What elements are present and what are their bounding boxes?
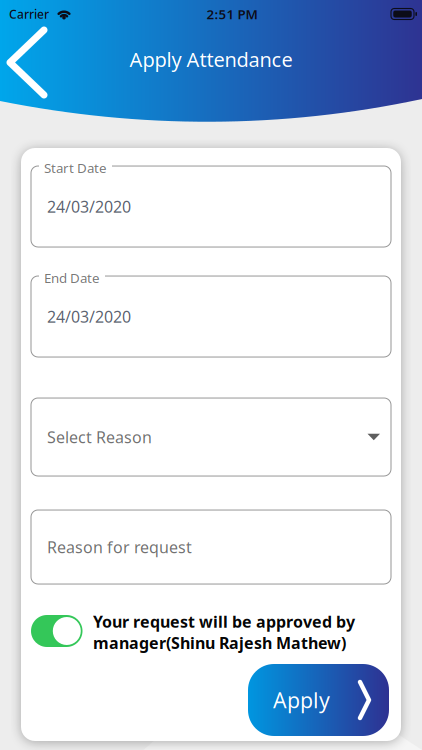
staticText: Start Date [44, 159, 107, 177]
staticText: 24/03/2020 [47, 306, 131, 327]
staticText: 2:51 PM [206, 5, 257, 23]
staticText: Apply Attendance [129, 46, 292, 73]
button[interactable]: Apply [248, 664, 389, 736]
staticText: Your request will be approved by manager… [93, 611, 355, 653]
staticText: Reason for request [47, 536, 192, 558]
button[interactable]: Back [0, 20, 54, 105]
staticText: End Date [44, 269, 100, 287]
button[interactable]: Manager approval [31, 615, 82, 647]
staticText: Carrier [9, 6, 49, 22]
staticText: 24/03/2020 [47, 196, 131, 217]
staticText: Select Reason [47, 426, 152, 448]
staticText: Apply [273, 686, 330, 714]
